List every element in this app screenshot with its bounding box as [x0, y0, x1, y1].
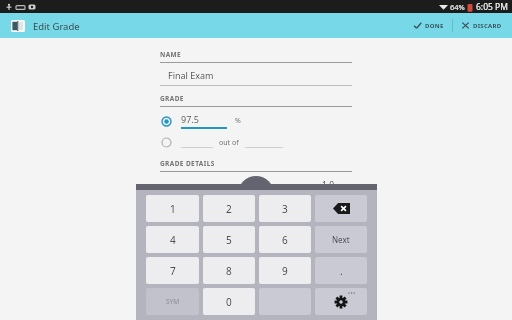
button[interactable]: Keyboard settings — [315, 288, 367, 315]
staticText: GRADE DETAILS — [160, 159, 215, 168]
button[interactable]: 8 — [203, 257, 255, 284]
button[interactable]: Backspace — [315, 195, 367, 222]
staticText: DONE — [425, 22, 444, 30]
staticText: 0 — [226, 295, 232, 309]
button[interactable]: Percent mode selected — [160, 115, 173, 128]
button[interactable]: Points mode — [160, 136, 173, 149]
staticText: 64% — [450, 2, 465, 12]
staticText: 6 — [282, 233, 288, 247]
button[interactable]: 5 — [203, 226, 255, 253]
button[interactable]: 0 — [203, 288, 255, 315]
button[interactable]: Keyboard handle — [238, 176, 274, 194]
staticText: DISCARD — [473, 22, 502, 30]
staticText: 1.0 — [304, 179, 352, 191]
staticText: NAME — [160, 50, 182, 59]
button[interactable]: DONE — [409, 18, 448, 33]
staticText: 7 — [170, 264, 176, 278]
staticText: 8 — [226, 264, 232, 278]
staticText: GRADE — [160, 94, 184, 103]
button[interactable]: SYM — [146, 288, 199, 315]
staticText: 97.5 — [181, 113, 199, 125]
button[interactable]: 7 — [146, 257, 199, 284]
button[interactable]: Final Exam — [160, 69, 352, 86]
button[interactable]: 2 — [203, 195, 255, 222]
staticText: Weight — [160, 184, 185, 194]
button[interactable]: Edit Grade — [11, 19, 80, 33]
button[interactable]: 9 — [259, 257, 311, 284]
staticText: 1 — [170, 202, 176, 216]
staticText: out of — [219, 138, 239, 148]
staticText: 6:05 PM — [476, 1, 508, 13]
staticText: 3 — [282, 202, 288, 216]
button[interactable]: Percent mode selected — [160, 113, 352, 129]
button[interactable]: 6 — [259, 226, 311, 253]
button[interactable]: 1 — [146, 195, 199, 222]
staticText: Next — [332, 234, 350, 245]
staticText: % — [235, 116, 241, 126]
staticText: 5 — [226, 233, 232, 247]
staticText: SYM — [166, 297, 180, 306]
button[interactable]: 4 — [146, 226, 199, 253]
staticText: Final Exam — [168, 69, 214, 81]
staticText: Edit Grade — [33, 20, 80, 33]
button[interactable]: Points mode — [160, 136, 352, 149]
button[interactable]: Weight — [160, 179, 352, 194]
button[interactable]: . — [315, 257, 367, 284]
staticText: 2 — [226, 202, 232, 216]
staticText: 4 — [170, 233, 176, 247]
staticText: . — [340, 264, 343, 278]
button[interactable]: 3 — [259, 195, 311, 222]
staticText: 9 — [282, 264, 288, 278]
button[interactable]: DISCARD — [457, 18, 506, 33]
button[interactable]: Next — [315, 226, 367, 253]
